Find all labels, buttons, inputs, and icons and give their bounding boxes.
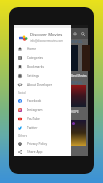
button[interactable]: Search [80,31,86,37]
button[interactable]: YouTube [14,114,71,123]
staticText: YouTube [27,117,40,121]
staticText: VIEW ALL [71,40,83,44]
staticText: Settings [27,74,40,78]
staticText: Categories [27,56,44,60]
button[interactable] [71,120,86,146]
button[interactable]: About Developer [14,80,71,89]
staticText: Instagram [27,108,43,112]
staticText: Twitter [27,126,38,130]
staticText: HOPE [71,110,79,114]
button[interactable]: Instagram [14,105,71,114]
staticText: Best Movies [71,74,87,78]
button[interactable]: Bookmarks [14,62,71,71]
staticText: Social [18,91,26,95]
button[interactable]: Facebook [14,96,71,105]
staticText: About Developer [27,83,53,87]
staticText: info@discovermovies.com [30,39,63,43]
button[interactable]: Settings [14,71,71,80]
staticText: Others [18,134,27,138]
staticText: Discover Movies [30,32,63,38]
button[interactable]: Privacy Policy [14,139,71,148]
staticText: Bookmarks [27,65,44,69]
staticText: Facebook [27,99,42,103]
button[interactable]: Share App [14,148,71,156]
staticText: Privacy Policy [27,142,48,146]
staticText: Share App [27,150,43,154]
button[interactable]: Categories [14,53,71,62]
button[interactable]: Twitter [14,123,71,132]
button[interactable]: Discover Movies [14,32,71,43]
button[interactable] [71,85,86,107]
button[interactable]: Home [14,44,71,53]
staticText: Home [27,47,37,51]
staticText: VIEW ALL [71,81,83,85]
button[interactable]: Notifications [72,31,78,37]
